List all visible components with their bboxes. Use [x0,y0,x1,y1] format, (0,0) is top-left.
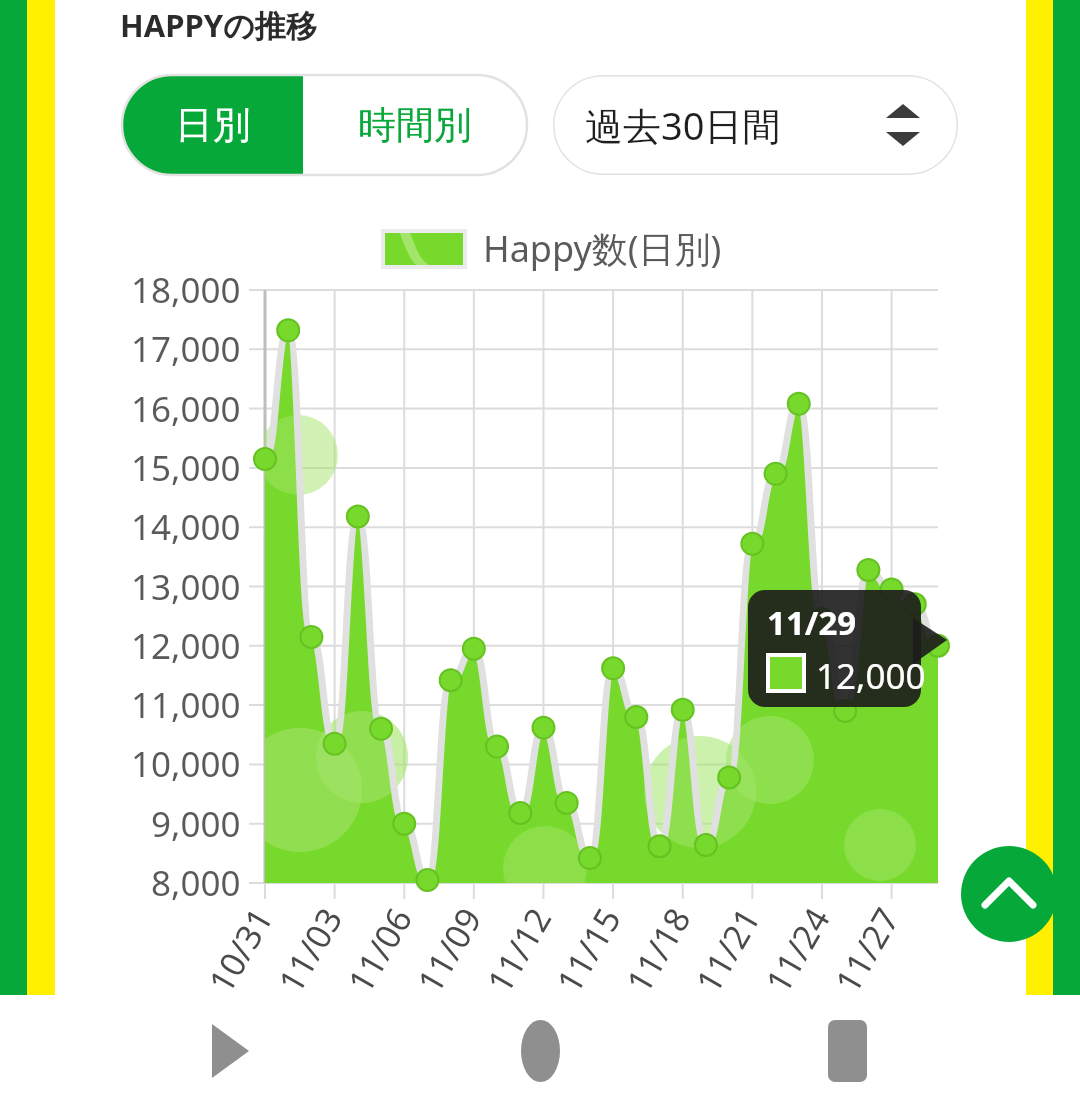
button[interactable]: 日別 [122,75,303,175]
button[interactable]: 時間別 [303,75,527,175]
staticText: 日別 [175,101,251,149]
staticText: 時間別 [358,101,472,149]
button[interactable]: Recents [793,1000,903,1100]
button[interactable]: Home [485,1000,595,1100]
staticText: HAPPYの推移 [120,4,317,46]
staticText: Happy数(日別) [483,224,722,273]
staticText: 過去30日間 [585,99,781,151]
button[interactable]: Scroll to top [961,846,1057,942]
button[interactable]: Back [180,1000,290,1100]
button[interactable]: 過去30日間 [553,75,958,175]
